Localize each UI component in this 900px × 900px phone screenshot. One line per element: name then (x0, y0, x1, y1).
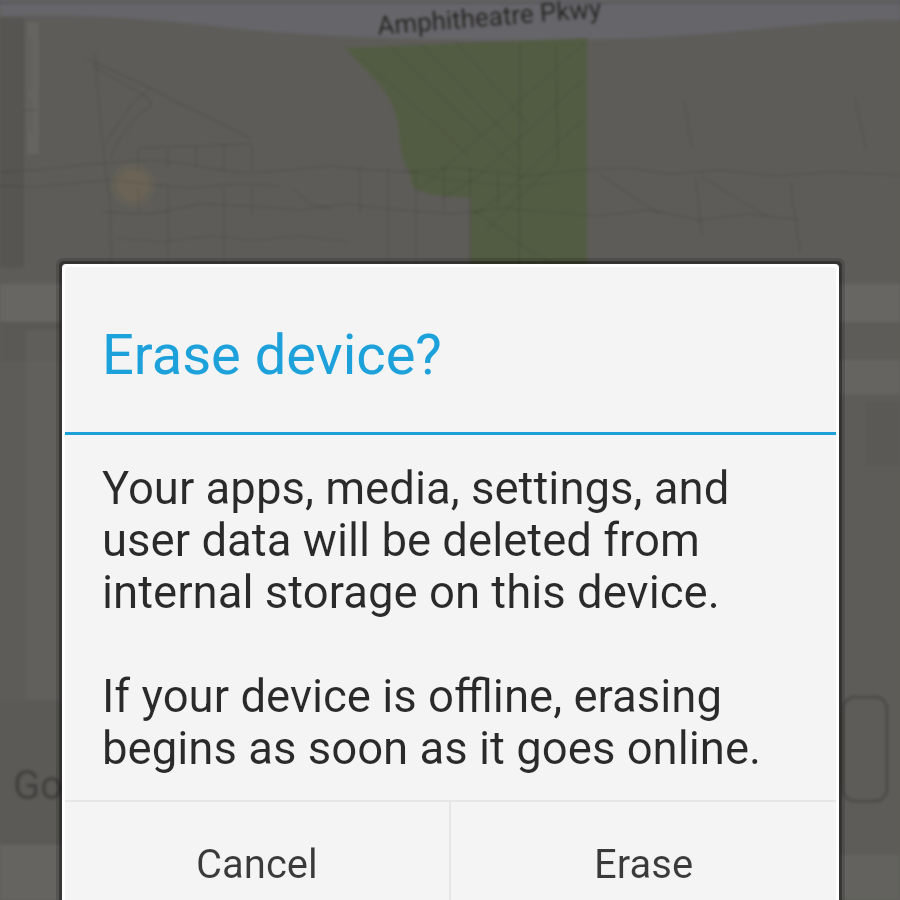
button[interactable]: Cancel (65, 802, 449, 900)
staticText: Erase device? (102, 322, 442, 388)
staticText: Cancel (196, 841, 318, 888)
staticText: Amphitheatre Pkwy (376, 0, 603, 41)
staticText: Google (13, 762, 140, 809)
button[interactable]: Erase (451, 802, 836, 900)
staticText: Erase (594, 841, 694, 888)
staticText: Your apps, media, settings, and user dat… (102, 462, 762, 775)
